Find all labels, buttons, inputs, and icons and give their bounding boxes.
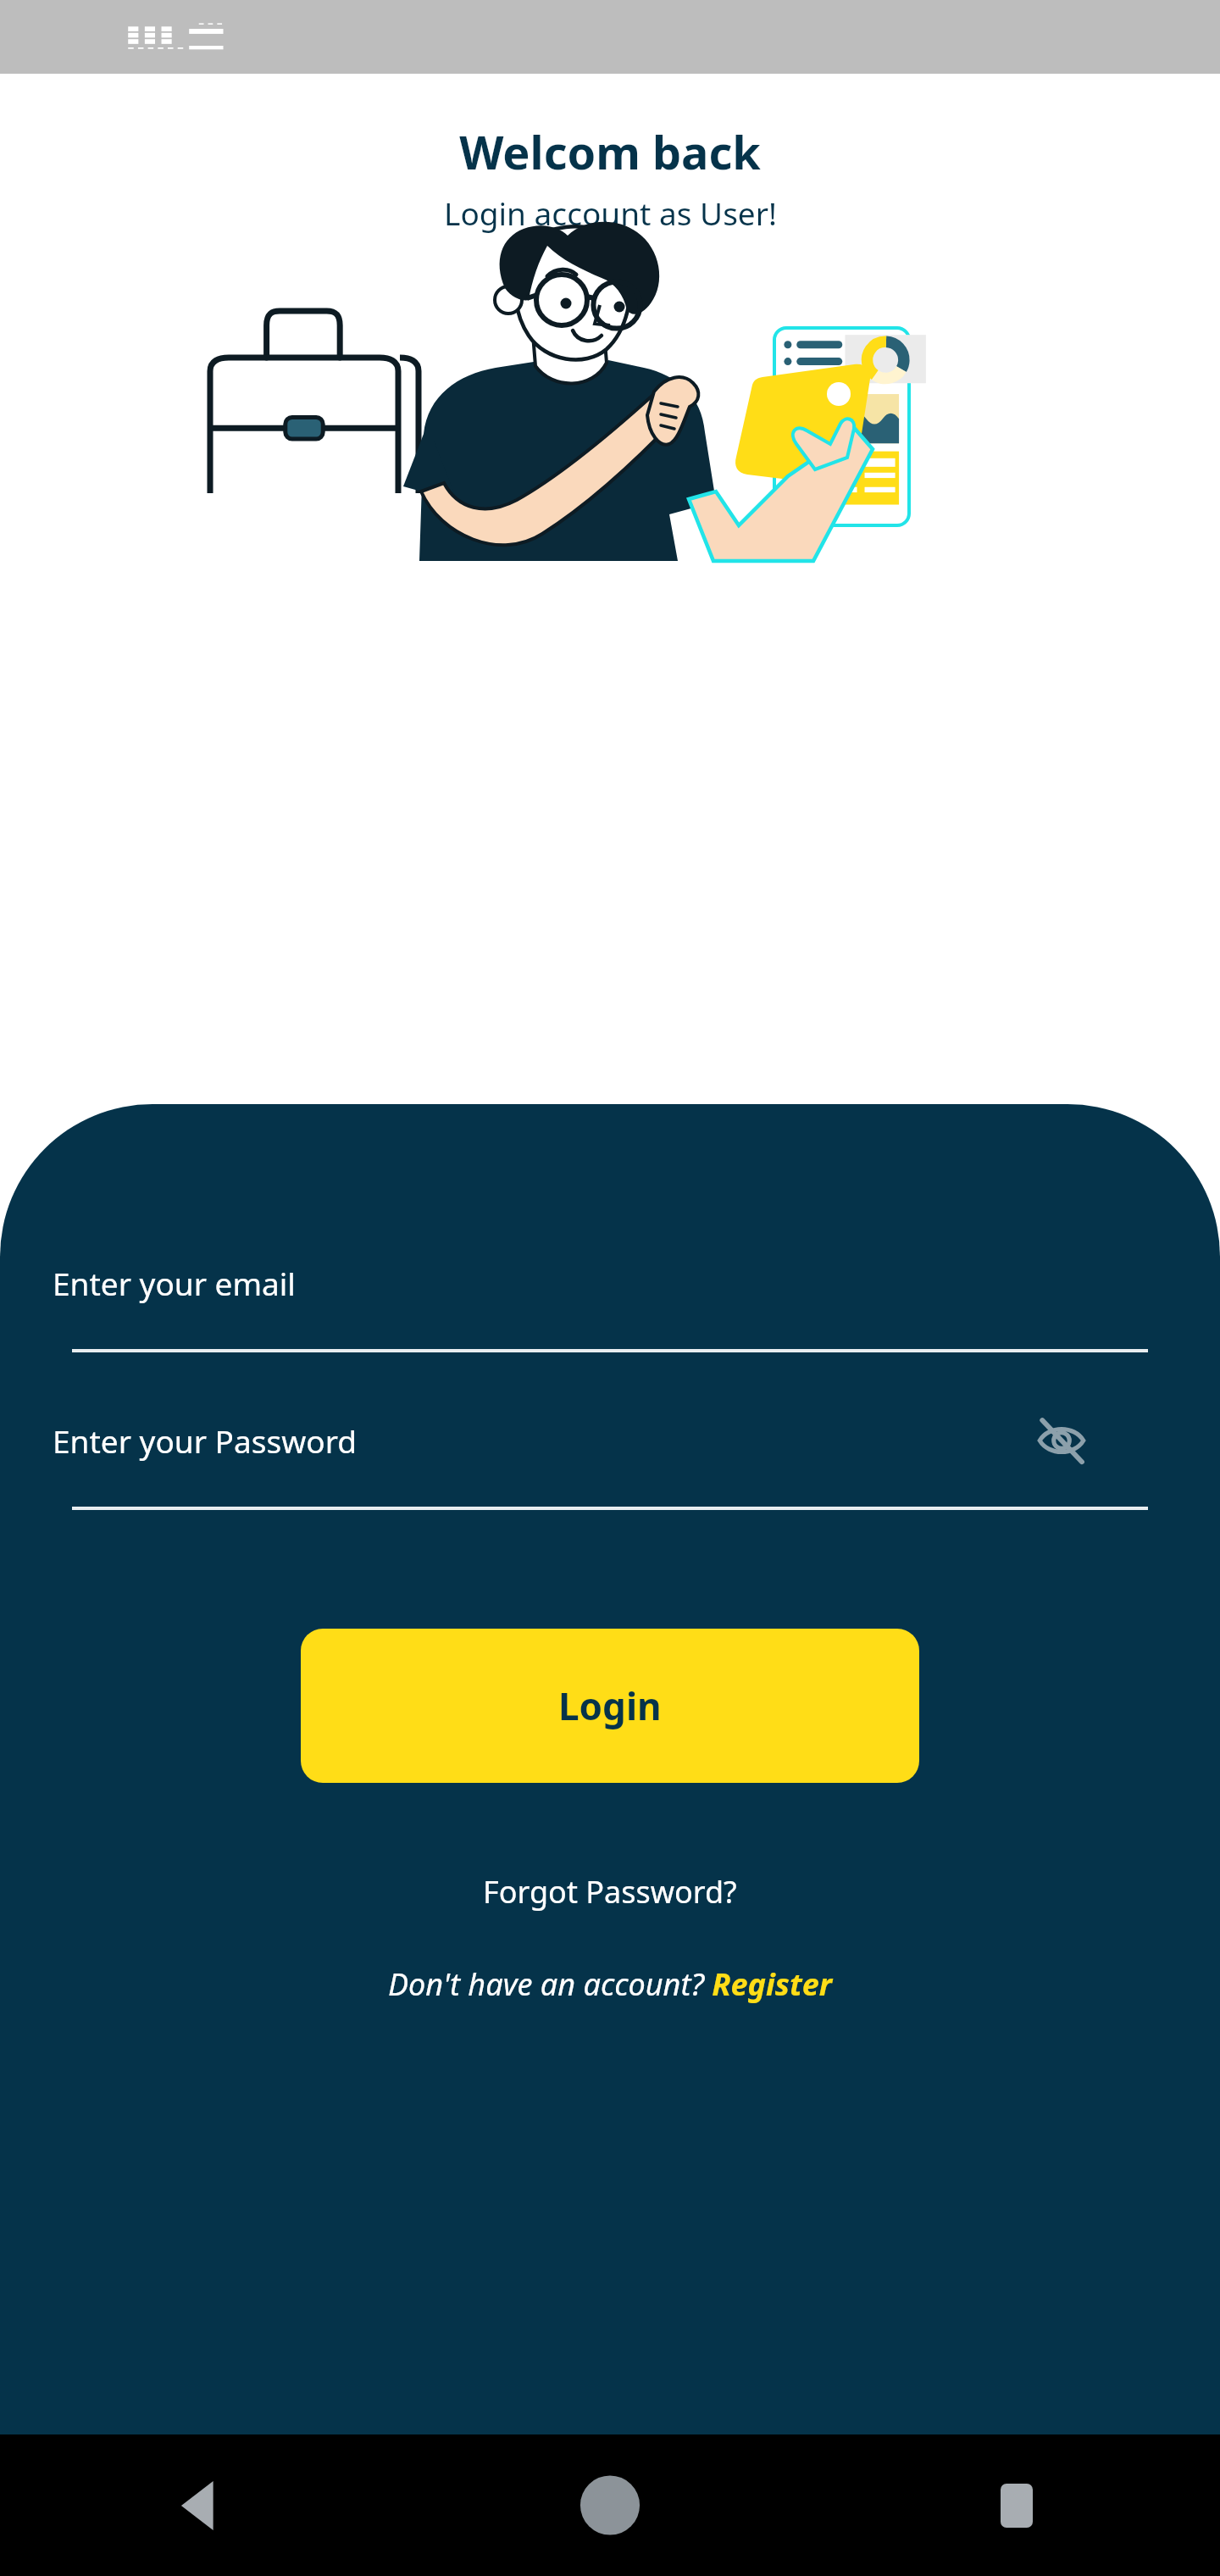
staticText: Enter your email [53, 1262, 296, 1304]
button[interactable]: Home [407, 2434, 813, 2576]
staticText: Login [558, 1680, 662, 1731]
button[interactable]: Recent apps [813, 2434, 1220, 2576]
staticText: Login account as User! [444, 192, 777, 234]
button[interactable]: Don't have an account? Register [366, 1953, 854, 2015]
button[interactable]: Show password [1026, 1410, 1097, 1471]
staticText: Don't have an account? Register [388, 1963, 832, 2005]
button[interactable]: Login [301, 1629, 919, 1783]
button[interactable]: Forgot Password? [461, 1859, 759, 1924]
staticText: Welcom back [459, 120, 761, 183]
button[interactable]: Enter your email [0, 1252, 1220, 1352]
button[interactable]: Back [0, 2434, 407, 2576]
button[interactable]: Enter your Password [0, 1410, 1220, 1510]
staticText: Enter your Password [53, 1419, 1026, 1462]
staticText: Forgot Password? [483, 1871, 737, 1913]
